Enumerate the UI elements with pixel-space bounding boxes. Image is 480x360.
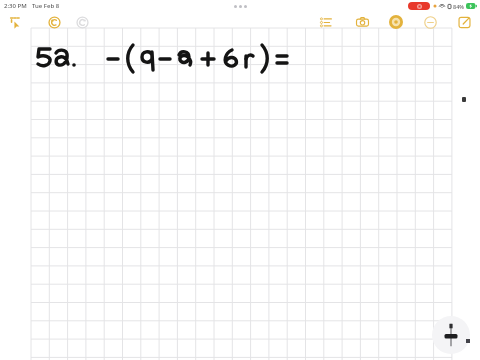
button[interactable]: More options [230,3,251,10]
staticText: 84% [453,3,464,10]
staticText: Tue Feb 8 [32,2,60,10]
button[interactable]: Lasso select [8,14,24,30]
button[interactable]: Page navigation [432,316,470,354]
button[interactable]: Camera [354,14,370,30]
button[interactable]: List options [318,14,334,30]
staticText: 2:30 PM [4,2,27,10]
button[interactable]: Undo [46,14,62,30]
button[interactable]: New note [456,14,472,30]
other: Recording [408,2,430,10]
button[interactable]: Redo [74,14,90,30]
button[interactable]: Highlighter [388,14,404,30]
button[interactable]: Eraser [422,14,438,30]
